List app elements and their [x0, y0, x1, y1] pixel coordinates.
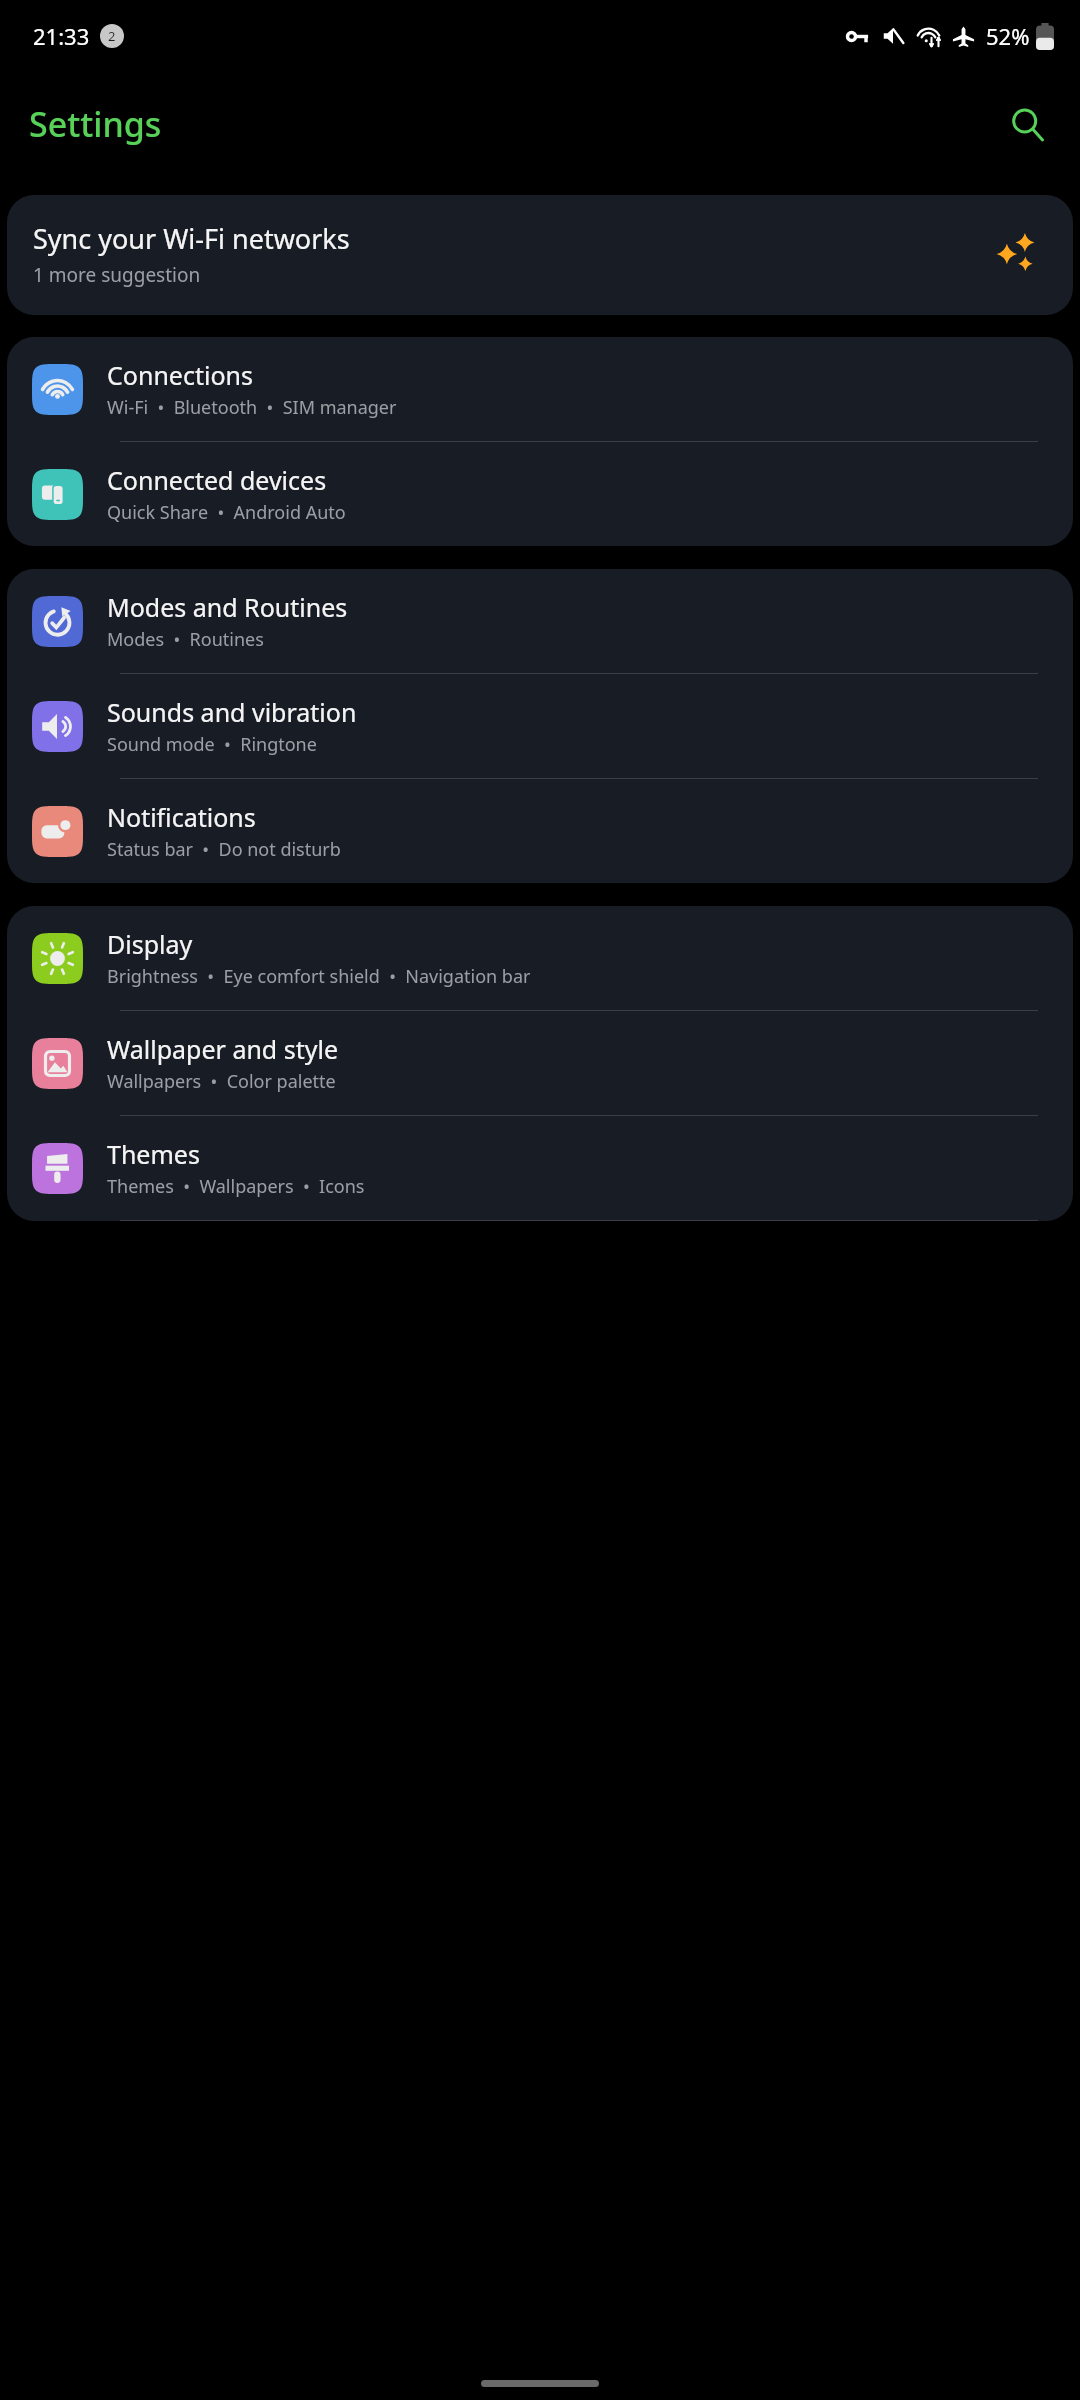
- button[interactable]: Search: [998, 95, 1056, 153]
- staticText: 52%: [986, 21, 1030, 51]
- staticText: Wi-Fi • Bluetooth • SIM manager: [107, 395, 397, 420]
- staticText: Quick Share • Android Auto: [107, 500, 346, 525]
- staticText: 21:33: [33, 21, 90, 51]
- staticText: Themes: [107, 1137, 200, 1171]
- staticText: Notifications: [107, 800, 256, 834]
- button[interactable]: Notifications: [7, 779, 1073, 883]
- staticText: Settings: [29, 101, 162, 147]
- button[interactable]: Sync your Wi-Fi networks: [7, 195, 1073, 315]
- button[interactable]: Modes and Routines: [7, 569, 1073, 673]
- staticText: Wallpapers • Color palette: [107, 1069, 336, 1094]
- button[interactable]: Display: [7, 906, 1073, 1010]
- staticText: Sound mode • Ringtone: [107, 732, 317, 757]
- button[interactable]: Sounds and vibration: [7, 674, 1073, 778]
- staticText: Connections: [107, 358, 253, 392]
- staticText: Connected devices: [107, 463, 327, 497]
- staticText: Display: [107, 927, 193, 961]
- button[interactable]: Themes: [7, 1116, 1073, 1220]
- staticText: Modes and Routines: [107, 590, 348, 624]
- staticText: Modes • Routines: [107, 627, 264, 652]
- staticText: Status bar • Do not disturb: [107, 837, 341, 862]
- staticText: Themes • Wallpapers • Icons: [107, 1174, 365, 1199]
- staticText: Sounds and vibration: [107, 695, 357, 729]
- button[interactable]: Connected devices: [7, 442, 1073, 546]
- staticText: 2: [108, 27, 116, 45]
- staticText: Sync your Wi-Fi networks: [33, 220, 350, 257]
- button[interactable]: Wallpaper and style: [7, 1011, 1073, 1115]
- button[interactable]: Connections: [7, 337, 1073, 441]
- staticText: Brightness • Eye comfort shield • Naviga…: [107, 964, 531, 989]
- staticText: Wallpaper and style: [107, 1032, 339, 1066]
- staticText: 1 more suggestion: [33, 262, 201, 288]
